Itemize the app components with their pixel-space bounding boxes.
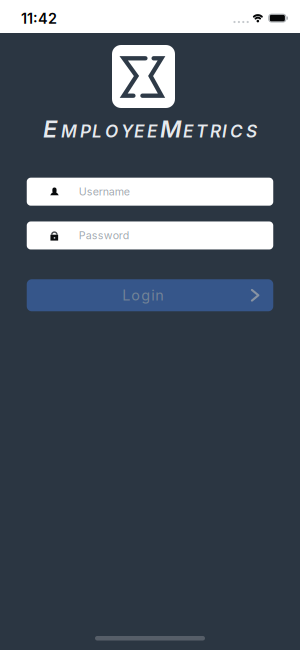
- staticText: E M P L O Y E E M E T R I C S: [43, 115, 257, 143]
- button[interactable]: L o g i n: [27, 279, 273, 311]
- staticText: L o g i n: [122, 287, 164, 304]
- staticText: Username: [79, 185, 130, 198]
- button[interactable]: Username: [27, 178, 273, 206]
- staticText: Password: [79, 229, 130, 242]
- staticText: 11:42: [21, 10, 57, 27]
- button[interactable]: Password: [27, 221, 273, 249]
